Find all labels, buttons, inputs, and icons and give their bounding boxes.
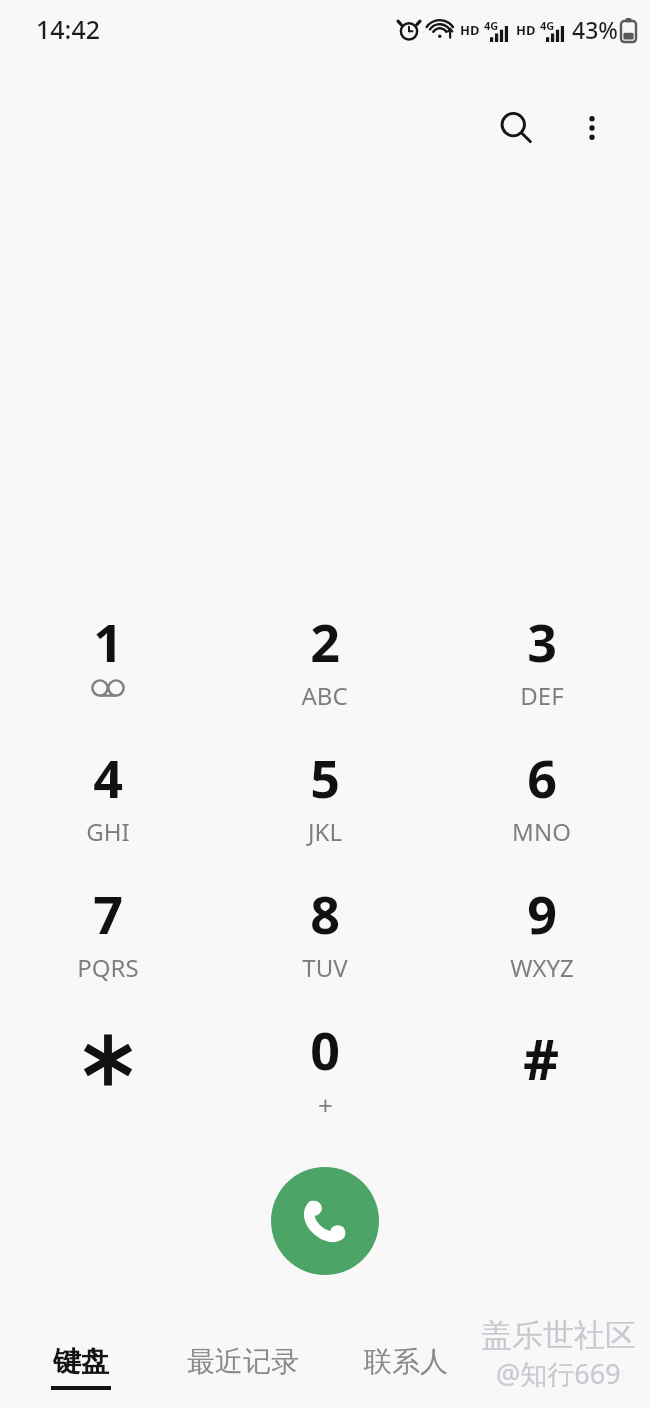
staticText: @知行669 <box>496 1355 621 1392</box>
staticText: 最近记录 <box>187 1344 299 1379</box>
staticText: MNO <box>512 815 571 848</box>
staticText: 6 <box>527 742 557 813</box>
staticText: HD <box>516 21 536 39</box>
button[interactable]: 1 <box>0 592 216 728</box>
button[interactable] <box>0 1000 216 1136</box>
button[interactable]: Search <box>478 90 554 166</box>
staticText: 2 <box>310 606 340 677</box>
staticText: 联系人 <box>364 1344 448 1379</box>
staticText: 8 <box>310 878 340 949</box>
staticText: JKL <box>308 815 342 848</box>
staticText: TUV <box>302 951 348 984</box>
staticText: HD <box>460 21 480 39</box>
button[interactable]: 9 <box>433 864 650 1000</box>
button[interactable]: More options <box>554 90 630 166</box>
button[interactable]: 8 <box>216 864 433 1000</box>
staticText: 3 <box>527 606 557 677</box>
staticText: 4G <box>540 18 555 33</box>
button[interactable]: 键盘 <box>0 1330 162 1408</box>
button[interactable]: 联系人 <box>324 1330 487 1408</box>
button[interactable]: 2 <box>216 592 433 728</box>
staticText: 4 <box>93 742 123 813</box>
button[interactable]: 5 <box>216 728 433 864</box>
staticText: 0 <box>310 1014 340 1085</box>
staticText: 9 <box>527 878 557 949</box>
staticText: DEF <box>520 679 564 712</box>
staticText: ABC <box>301 679 348 712</box>
button[interactable]: 最近记录 <box>162 1330 324 1408</box>
staticText: 1 <box>93 606 123 677</box>
button[interactable]: 3 <box>433 592 650 728</box>
button[interactable]: 0 <box>216 1000 433 1136</box>
button[interactable]: 7 <box>0 864 216 1000</box>
button[interactable]: Call <box>271 1167 379 1275</box>
staticText: 键盘 <box>53 1344 109 1379</box>
button[interactable]: 6 <box>433 728 650 864</box>
staticText: WXYZ <box>510 951 574 984</box>
button[interactable]: 4 <box>0 728 216 864</box>
staticText: 4G <box>484 18 499 33</box>
button[interactable]: # <box>433 1000 650 1136</box>
staticText: PQRS <box>77 951 139 984</box>
staticText: 14:42 <box>36 12 101 46</box>
staticText: + <box>318 1087 333 1122</box>
staticText: 7 <box>93 878 123 949</box>
staticText: 43% <box>572 14 618 45</box>
staticText: GHI <box>86 815 130 848</box>
staticText: 盖乐世社区 <box>481 1316 636 1355</box>
staticText: 5 <box>310 742 340 813</box>
staticText: # <box>523 1020 560 1096</box>
